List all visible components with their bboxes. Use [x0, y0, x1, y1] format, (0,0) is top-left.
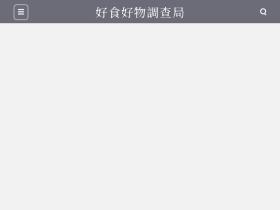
button[interactable]: Menu	[10, 1, 32, 23]
button[interactable]: Search	[252, 1, 274, 23]
staticText: 好食好物調查局	[96, 3, 184, 20]
